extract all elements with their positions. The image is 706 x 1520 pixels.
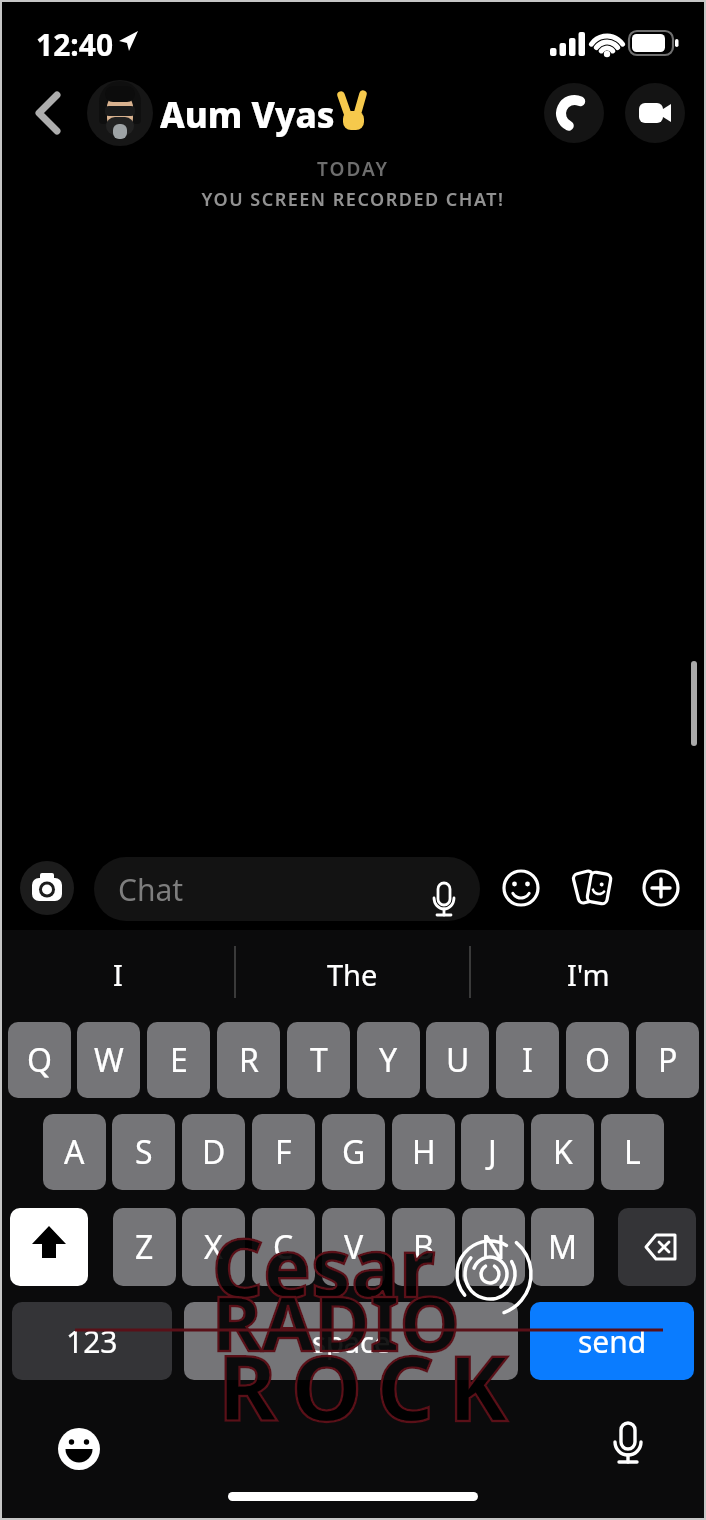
button[interactable]: 123 — [12, 1302, 172, 1380]
staticText: Y — [379, 1038, 398, 1082]
button[interactable] — [10, 1208, 88, 1286]
staticText: ROCK — [218, 1325, 522, 1448]
button[interactable]: Chat — [94, 857, 480, 921]
button[interactable]: The — [235, 941, 470, 1007]
staticText: M — [548, 1225, 578, 1269]
button[interactable]: E — [147, 1022, 210, 1098]
button[interactable]: T — [287, 1022, 350, 1098]
staticText: I'm — [567, 955, 610, 994]
staticText: E — [170, 1038, 188, 1082]
staticText: Aum Vyas — [160, 91, 420, 144]
staticText: X — [204, 1225, 223, 1269]
button[interactable]: space — [184, 1302, 518, 1380]
button[interactable] — [544, 83, 604, 143]
staticText: T — [310, 1038, 328, 1082]
staticText: G — [342, 1130, 366, 1174]
button[interactable]: L — [601, 1114, 664, 1190]
staticText: F — [275, 1130, 292, 1174]
button[interactable]: A — [43, 1114, 106, 1190]
staticText: O — [585, 1038, 610, 1082]
button[interactable]: M — [531, 1208, 594, 1286]
staticText: ROCK — [218, 1325, 522, 1448]
button[interactable] — [20, 861, 74, 915]
staticText: S — [135, 1130, 153, 1174]
button[interactable]: R — [217, 1022, 280, 1098]
staticText: YOU SCREEN RECORDED CHAT! — [0, 187, 706, 223]
staticText: R — [239, 1038, 259, 1082]
button[interactable] — [625, 83, 685, 143]
button[interactable]: I — [496, 1022, 559, 1098]
staticText: J — [488, 1130, 497, 1174]
staticText: I — [522, 1038, 533, 1082]
staticText: C — [273, 1225, 294, 1269]
staticText: RADIO — [212, 1270, 460, 1374]
staticText: P — [658, 1038, 678, 1082]
button[interactable] — [56, 1427, 102, 1473]
button[interactable]: I — [0, 941, 235, 1007]
button[interactable] — [24, 85, 74, 141]
button[interactable]: X — [182, 1208, 245, 1286]
staticText: A — [64, 1130, 85, 1174]
staticText: N — [481, 1225, 506, 1269]
button[interactable] — [637, 864, 685, 912]
staticText: L — [624, 1130, 641, 1174]
staticText: The — [327, 955, 378, 994]
button[interactable]: I'm — [470, 941, 706, 1007]
button[interactable] — [497, 864, 545, 912]
staticText: Cesar — [212, 1211, 435, 1320]
staticText: I — [113, 955, 123, 994]
button[interactable] — [604, 1421, 652, 1469]
button[interactable]: C — [252, 1208, 315, 1286]
button[interactable]: O — [566, 1022, 629, 1098]
staticText: D — [202, 1130, 226, 1174]
staticText: K — [553, 1130, 573, 1174]
staticText: RADIO — [212, 1270, 460, 1374]
button[interactable]: send — [530, 1302, 694, 1380]
button[interactable]: G — [322, 1114, 385, 1190]
button[interactable]: H — [392, 1114, 455, 1190]
button[interactable]: F — [252, 1114, 315, 1190]
staticText: W — [94, 1038, 124, 1082]
button[interactable]: V — [322, 1208, 385, 1286]
button[interactable]: Q — [8, 1022, 71, 1098]
button[interactable]: B — [392, 1208, 455, 1286]
button[interactable]: S — [112, 1114, 175, 1190]
staticText: Z — [135, 1225, 154, 1269]
staticText: 12:40 — [36, 24, 146, 72]
staticText: Cesar — [212, 1211, 435, 1320]
button[interactable] — [87, 80, 153, 146]
button[interactable]: U — [426, 1022, 489, 1098]
staticText: H — [412, 1130, 436, 1174]
staticText: B — [413, 1225, 434, 1269]
button[interactable]: D — [182, 1114, 245, 1190]
button[interactable]: Z — [113, 1208, 176, 1286]
button[interactable]: W — [77, 1022, 140, 1098]
button[interactable] — [568, 864, 616, 912]
button[interactable]: K — [531, 1114, 594, 1190]
button[interactable]: Y — [357, 1022, 420, 1098]
staticText: V — [344, 1225, 364, 1269]
staticText: Q — [27, 1038, 52, 1082]
button[interactable] — [618, 1208, 696, 1286]
button[interactable]: J — [461, 1114, 524, 1190]
staticText: 123 — [66, 1321, 118, 1362]
staticText: TODAY — [0, 156, 706, 193]
button[interactable]: N — [462, 1208, 525, 1286]
staticText: U — [446, 1038, 470, 1082]
staticText: send — [578, 1321, 647, 1362]
button[interactable]: P — [636, 1022, 699, 1098]
staticText: space — [312, 1322, 391, 1361]
staticText: Chat — [118, 869, 184, 910]
